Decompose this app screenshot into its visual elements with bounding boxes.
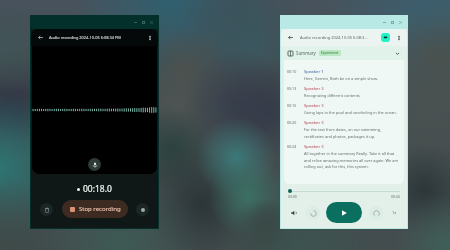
staticText: 00:16: [287, 103, 304, 108]
staticText: Speaker 3: [304, 86, 324, 92]
staticText: 00:00: [288, 194, 297, 199]
button[interactable]: Maximize: [388, 17, 396, 28]
button[interactable]: Forward 10 seconds: [369, 206, 383, 220]
staticText: 1x: [392, 210, 397, 215]
staticText: 00:24: [287, 144, 304, 149]
button[interactable]: Settings: [136, 203, 149, 216]
button[interactable]: Delete: [40, 203, 53, 216]
button[interactable]: Close: [396, 17, 404, 28]
staticText: For the text from dates, on our swimming…: [304, 127, 400, 139]
button[interactable]: Rewind 10 seconds: [306, 206, 320, 220]
button[interactable]: 00:24: [287, 144, 400, 169]
staticText: Going laps in the pool and snorkeling in…: [304, 110, 397, 115]
staticText: 00:18.0: [83, 183, 112, 195]
staticText: Speaker 3: [304, 120, 324, 126]
button[interactable]: Stop recording: [62, 200, 128, 218]
staticText: Stop recording: [79, 205, 121, 213]
staticText: All together in the summary Really. Take…: [304, 151, 400, 169]
button[interactable]: Microphone: [88, 158, 101, 171]
staticText: 00:13: [287, 86, 304, 91]
button[interactable]: More options: [394, 33, 403, 42]
button[interactable]: Mute: [288, 207, 299, 218]
button[interactable]: Close: [147, 17, 155, 28]
button[interactable]: Minimize: [380, 17, 388, 28]
staticText: Summary: [296, 50, 316, 56]
staticText: Recognizing different contents: [304, 93, 360, 98]
button[interactable]: More options: [145, 33, 154, 42]
staticText: 00:34: [391, 194, 400, 199]
button[interactable]: Back: [286, 33, 295, 42]
staticText: Here, Gemini, Both be on a simple show.: [304, 76, 378, 81]
staticText: Speaker 3: [304, 103, 324, 109]
staticText: Speaker 3: [304, 144, 324, 150]
button[interactable]: 00:16: [287, 103, 400, 115]
staticText: 00:10: [287, 69, 304, 74]
button[interactable]: Back: [36, 33, 45, 42]
button[interactable]: Maximize: [139, 17, 147, 28]
staticText: Speaker 1: [304, 69, 324, 75]
button[interactable]: Play: [326, 202, 362, 223]
button[interactable]: 00:20: [287, 120, 400, 139]
button[interactable]: 00:13: [287, 86, 400, 98]
staticText: Audio recording 2024-10-05 6:08:34 PM: [49, 35, 121, 40]
button[interactable]: 00:10: [287, 69, 400, 81]
staticText: 00:20: [287, 120, 304, 125]
button[interactable]: Summary: [288, 46, 400, 60]
button[interactable]: Minimize: [131, 17, 139, 28]
button[interactable]: Gemini: [381, 33, 390, 42]
button[interactable]: Playback speed: [389, 207, 400, 218]
staticText: Audio recording 2024-10-05 6:08:3...: [300, 35, 368, 40]
staticText: Experiment: [321, 51, 339, 55]
